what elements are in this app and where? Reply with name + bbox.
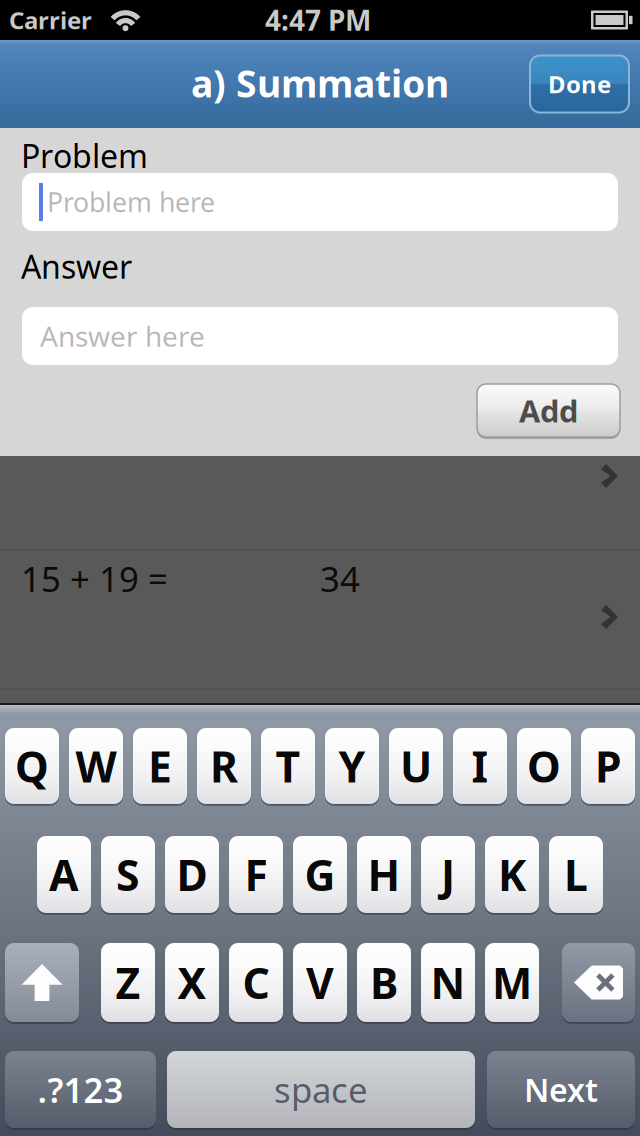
staticText: D <box>176 846 207 903</box>
staticText: F <box>244 846 267 903</box>
button[interactable]: Q <box>5 728 59 804</box>
staticText: Next <box>524 1068 598 1111</box>
staticText: J <box>441 846 455 903</box>
staticText: W <box>75 738 116 794</box>
staticText: L <box>564 846 588 903</box>
staticText: Problem here <box>47 184 215 220</box>
button[interactable]: X <box>165 943 219 1022</box>
staticText: T <box>275 738 300 794</box>
button[interactable]: F <box>229 836 283 913</box>
button[interactable]: space <box>167 1051 475 1128</box>
button[interactable]: .?123 <box>5 1051 156 1128</box>
staticText: 15 + 19 = <box>21 555 168 601</box>
button[interactable]: M <box>485 943 539 1022</box>
button[interactable]: Y <box>325 728 379 804</box>
staticText: A <box>49 846 79 903</box>
button[interactable]: D <box>165 836 219 913</box>
button[interactable]: Shift <box>5 943 79 1022</box>
staticText: X <box>177 954 206 1011</box>
staticText: Answer <box>21 245 132 287</box>
staticText: O <box>527 738 561 794</box>
staticText: R <box>210 738 238 794</box>
button[interactable]: W <box>69 728 123 804</box>
staticText: I <box>471 738 488 794</box>
staticText: B <box>370 954 398 1011</box>
staticText: G <box>304 846 335 903</box>
button[interactable]: Add <box>477 384 620 437</box>
button[interactable]: V <box>293 943 347 1022</box>
staticText: S <box>116 846 140 903</box>
button[interactable]: L <box>549 836 603 913</box>
staticText: Answer here <box>40 317 205 355</box>
staticText: Carrier <box>9 4 92 36</box>
staticText: a) Summation <box>191 58 449 108</box>
button[interactable]: T <box>261 728 315 804</box>
staticText: K <box>498 846 526 903</box>
staticText: Y <box>338 738 365 794</box>
button[interactable]: R <box>197 728 251 804</box>
staticText: N <box>430 954 465 1011</box>
staticText: space <box>274 1066 368 1112</box>
staticText: Problem <box>21 134 148 177</box>
button[interactable]: E <box>133 728 187 804</box>
button[interactable]: J <box>421 836 475 913</box>
button[interactable]: Z <box>101 943 155 1022</box>
button[interactable]: I <box>453 728 507 804</box>
button[interactable]: S <box>101 836 155 913</box>
button[interactable]: O <box>517 728 571 804</box>
staticText: 34 <box>320 555 360 601</box>
staticText: V <box>306 954 334 1011</box>
staticText: Done <box>548 68 611 100</box>
staticText: M <box>492 954 532 1011</box>
staticText: E <box>148 738 172 794</box>
staticText: P <box>595 738 621 794</box>
button[interactable]: Done <box>530 55 629 112</box>
button[interactable]: H <box>357 836 411 913</box>
staticText: .?123 <box>37 1066 123 1112</box>
button[interactable]: C <box>229 943 283 1022</box>
button[interactable]: Delete <box>562 943 635 1022</box>
staticText: Add <box>519 390 578 431</box>
staticText: H <box>367 846 400 903</box>
button[interactable]: P <box>581 728 635 804</box>
button[interactable]: Next <box>487 1051 635 1128</box>
staticText: C <box>242 954 269 1011</box>
staticText: 4:47 PM <box>265 1 371 39</box>
button[interactable]: B <box>357 943 411 1022</box>
button[interactable]: U <box>389 728 443 804</box>
staticText: U <box>400 738 432 794</box>
button[interactable]: 15 + 19 = <box>0 550 640 688</box>
staticText: Q <box>15 738 49 794</box>
button[interactable]: K <box>485 836 539 913</box>
button[interactable]: G <box>293 836 347 913</box>
button[interactable]: A <box>37 836 91 913</box>
button[interactable]: N <box>421 943 475 1022</box>
staticText: Z <box>115 954 140 1011</box>
